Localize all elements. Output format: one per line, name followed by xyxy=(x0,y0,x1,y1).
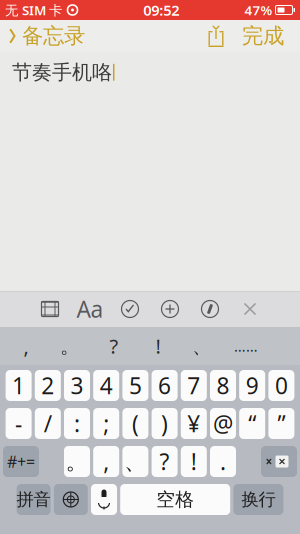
staticText: : xyxy=(74,408,80,438)
button[interactable]: . xyxy=(210,446,236,477)
button[interactable]: 完成 xyxy=(234,20,292,52)
button[interactable]: ) xyxy=(152,408,178,439)
staticText: 、 xyxy=(192,334,212,358)
button[interactable]: Insert table xyxy=(30,291,70,327)
button[interactable]: 、 xyxy=(180,328,224,364)
staticText: 8 xyxy=(216,370,229,400)
button[interactable]: Delete xyxy=(261,446,297,477)
button[interactable]: 2 xyxy=(35,370,61,401)
staticText: 6 xyxy=(158,370,171,400)
staticText: ! xyxy=(155,333,160,359)
button[interactable]: 1 xyxy=(6,370,32,401)
button[interactable]: @ xyxy=(210,408,236,439)
staticText: 。 xyxy=(65,448,88,475)
staticText: 。 xyxy=(60,334,80,358)
button[interactable]: Markup xyxy=(190,291,230,327)
button[interactable]: , xyxy=(4,328,48,364)
staticText: “ xyxy=(248,408,256,438)
staticText: 4 xyxy=(100,370,113,400)
staticText: …… xyxy=(234,336,258,356)
button[interactable]: 、 xyxy=(122,446,148,477)
button[interactable]: ? xyxy=(92,328,136,364)
staticText: ¥ xyxy=(187,408,200,438)
staticText: 0 xyxy=(275,370,288,400)
staticText: ) xyxy=(161,408,168,438)
staticText: , xyxy=(23,333,28,359)
button[interactable]: 8 xyxy=(210,370,236,401)
button[interactable]: 0 xyxy=(268,370,294,401)
staticText: 1 xyxy=(12,370,25,400)
button[interactable]: : xyxy=(64,408,90,439)
staticText: 完成 xyxy=(242,23,284,49)
button[interactable]: Checklist xyxy=(110,291,150,327)
button[interactable]: #+= xyxy=(3,446,39,477)
staticText: 、 xyxy=(124,448,147,475)
staticText: 7 xyxy=(187,370,200,400)
button[interactable]: Next keyboard xyxy=(54,484,88,515)
button[interactable]: ; xyxy=(93,408,119,439)
button[interactable]: 。 xyxy=(64,446,90,477)
button[interactable]: …… xyxy=(224,328,268,364)
button[interactable]: 空格 xyxy=(120,484,230,515)
button[interactable]: Text format xyxy=(70,291,110,327)
button[interactable]: ! xyxy=(181,446,207,477)
button[interactable]: 拼音 xyxy=(17,484,51,515)
button[interactable]: 9 xyxy=(239,370,265,401)
staticText: , xyxy=(103,446,109,476)
staticText: ? xyxy=(160,446,170,476)
staticText: 2 xyxy=(41,370,54,400)
staticText: 3 xyxy=(70,370,83,400)
button[interactable]: 6 xyxy=(152,370,178,401)
staticText: 5 xyxy=(129,370,142,400)
button[interactable]: ” xyxy=(268,408,294,439)
staticText: . xyxy=(220,446,226,476)
staticText: ! xyxy=(191,446,197,476)
button[interactable]: Add attachment xyxy=(150,291,190,327)
staticText: ; xyxy=(103,408,109,438)
button[interactable]: 备忘录 xyxy=(0,20,95,52)
staticText: 9 xyxy=(246,370,259,400)
staticText: 备忘录 xyxy=(22,23,85,49)
button[interactable]: 。 xyxy=(48,328,92,364)
staticText: / xyxy=(44,408,52,438)
button[interactable]: ¥ xyxy=(181,408,207,439)
staticText: @ xyxy=(213,408,233,438)
staticText: - xyxy=(15,408,22,438)
button[interactable]: Dictation xyxy=(91,484,117,515)
staticText: 拼音 xyxy=(17,489,51,510)
staticText: 09:52 xyxy=(143,0,179,20)
button[interactable]: Hide keyboard xyxy=(230,291,270,327)
button[interactable]: 换行 xyxy=(233,484,283,515)
button[interactable]: 7 xyxy=(181,370,207,401)
button[interactable]: 5 xyxy=(122,370,148,401)
button[interactable]: - xyxy=(6,408,32,439)
staticText: ” xyxy=(277,408,285,438)
button[interactable]: Share xyxy=(198,20,234,52)
button[interactable]: / xyxy=(35,408,61,439)
button[interactable]: , xyxy=(93,446,119,477)
button[interactable]: 4 xyxy=(93,370,119,401)
staticText: 节奏手机咯 xyxy=(12,60,112,85)
button[interactable]: ( xyxy=(122,408,148,439)
staticText: ( xyxy=(132,408,139,438)
button[interactable]: “ xyxy=(239,408,265,439)
staticText: 47% xyxy=(244,1,272,19)
staticText: #+= xyxy=(7,451,35,472)
staticText: 空格 xyxy=(156,488,194,511)
staticText: 换行 xyxy=(241,489,275,510)
button[interactable]: ! xyxy=(136,328,180,364)
button[interactable]: 3 xyxy=(64,370,90,401)
staticText: Aa xyxy=(76,294,103,324)
staticText: 无 SIM 卡 xyxy=(5,1,62,19)
staticText: ? xyxy=(109,333,118,359)
button[interactable]: ? xyxy=(152,446,178,477)
